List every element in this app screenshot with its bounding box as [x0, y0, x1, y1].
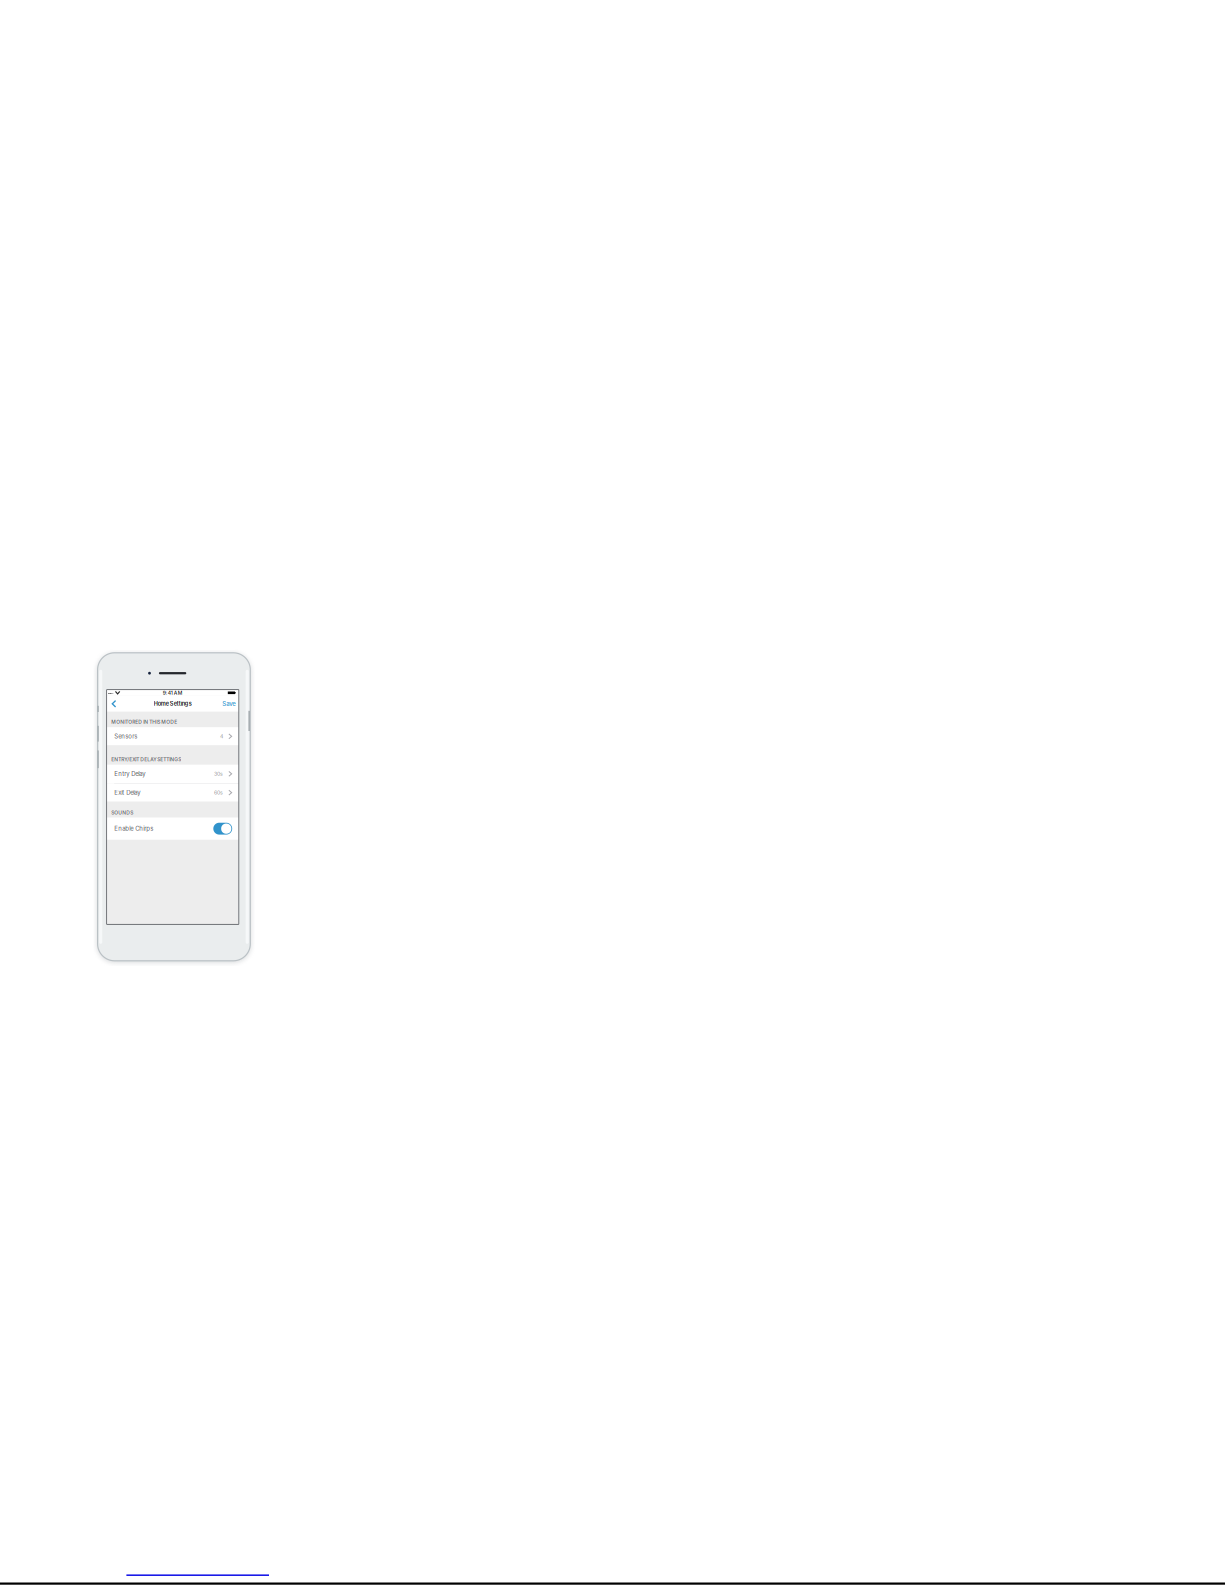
staticText: ENTRY/EXIT DELAY SETTINGS: [111, 756, 181, 762]
button[interactable]: Sensors: [107, 727, 239, 745]
staticText: 9:41 AM: [163, 690, 183, 696]
staticText: MONITORED IN THIS MODE: [111, 719, 177, 725]
staticText: 60s: [214, 789, 223, 796]
staticText: 30s: [214, 771, 223, 777]
button[interactable]: Entry Delay: [107, 765, 239, 783]
staticText: 4: [220, 733, 223, 739]
button[interactable]: Save: [218, 696, 239, 711]
staticText: Enable Chirps: [114, 825, 153, 832]
staticText: SOUNDS: [111, 810, 133, 816]
button[interactable]: Exit Delay: [107, 783, 239, 802]
button[interactable]: Enable Chirps: [213, 823, 232, 835]
button[interactable]: Back: [107, 696, 120, 712]
staticText: Entry Delay: [114, 770, 145, 777]
staticText: Exit Delay: [114, 789, 140, 796]
staticText: Home Settings: [154, 700, 192, 707]
staticText: Sensors: [114, 733, 137, 740]
staticText: Save: [222, 700, 236, 707]
